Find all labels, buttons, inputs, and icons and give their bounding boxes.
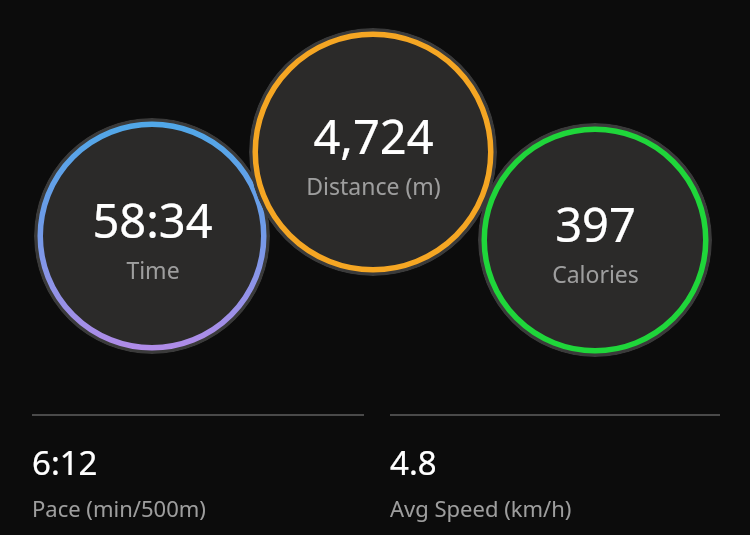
staticText: 58:34 (92, 188, 213, 252)
button[interactable]: Distance 4,724 metres (249, 28, 497, 276)
staticText: 4.8 (390, 440, 437, 485)
staticText: 4,724 (313, 104, 434, 168)
button[interactable]: 4.8 (390, 414, 720, 523)
button[interactable]: 6:12 (32, 414, 390, 523)
button[interactable]: Calories 397 (478, 123, 712, 357)
button[interactable]: Time 58:34 (34, 118, 270, 354)
staticText: Pace (min/500m) (32, 493, 206, 523)
staticText: 6:12 (32, 440, 98, 485)
staticText: Avg Speed (km/h) (390, 493, 572, 523)
staticText: 397 (555, 192, 636, 256)
staticText: Calories (552, 258, 639, 289)
staticText: Time (126, 254, 180, 285)
staticText: Distance (m) (306, 170, 441, 201)
